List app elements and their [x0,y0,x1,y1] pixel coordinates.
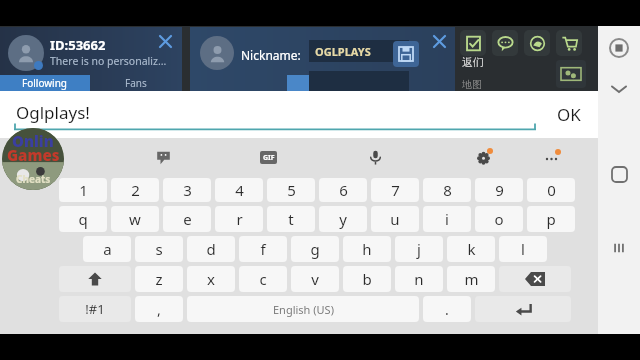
button[interactable]: z [135,266,183,292]
button[interactable]: 1 [59,178,107,202]
staticText: e [183,209,192,229]
staticText: ID:53662 [50,36,106,54]
staticText: l [521,239,525,259]
button[interactable]: Recents [609,238,629,258]
button[interactable]: Voice input [362,144,388,170]
button[interactable]: o [475,206,523,232]
button[interactable]: g [291,236,339,262]
staticText: s [155,239,163,259]
button[interactable]: 0 [527,178,575,202]
staticText: n [414,269,424,289]
button[interactable]: b [343,266,391,292]
button[interactable]: Game action 1 [492,30,518,56]
button[interactable]: d [187,236,235,262]
staticText: Nickname: [241,47,301,63]
button[interactable]: Game action 3 [556,30,582,56]
staticText: 9 [495,180,504,200]
button[interactable]: u [371,206,419,232]
staticText: 0 [547,180,556,200]
staticText: Following [22,76,68,90]
staticText: x [207,269,215,289]
staticText: Oglplays! [16,101,90,124]
button[interactable]: Following [0,75,90,91]
button[interactable]: Collapse [609,79,629,99]
button[interactable]: a [83,236,131,262]
staticText: Games [7,145,60,165]
button[interactable]: 2 [111,178,159,202]
button[interactable]: w [111,206,159,232]
button[interactable]: 9 [475,178,523,202]
staticText: z [155,269,163,289]
staticText: f [260,239,266,259]
button[interactable]: k [447,236,495,262]
button[interactable]: 8 [423,178,471,202]
button[interactable]: e [163,206,211,232]
button[interactable]: Fans [90,75,182,91]
staticText: Cheats [16,172,51,186]
button[interactable]: Enter [475,296,571,322]
staticText: g [310,239,320,259]
button[interactable]: l [499,236,547,262]
button[interactable]: 7 [371,178,419,202]
button[interactable]: p [527,206,575,232]
button[interactable]: . [423,296,471,322]
button[interactable]: 4 [215,178,263,202]
button[interactable]: f [239,236,287,262]
staticText: , [157,300,161,319]
button[interactable]: Stickers [150,144,176,170]
button[interactable]: s [135,236,183,262]
staticText: There is no personaliz... [50,54,167,68]
button[interactable]: 3 [163,178,211,202]
button[interactable]: i [423,206,471,232]
button[interactable]: OK [540,91,598,138]
button[interactable]: Game action 2 [524,30,550,56]
staticText: Fans [125,76,147,90]
staticText: o [494,209,504,229]
staticText: d [206,239,216,259]
button[interactable]: Save [393,41,419,67]
button[interactable]: Shift [59,266,131,292]
staticText: OGLPLAYS [315,44,371,59]
staticText: v [311,269,319,289]
staticText: m [464,269,479,289]
button[interactable]: Game action 0 [460,30,486,56]
button[interactable]: 6 [319,178,367,202]
button[interactable]: Close [429,31,449,51]
button[interactable]: Home [609,164,629,184]
button[interactable]: m [447,266,495,292]
staticText: 5 [287,180,296,200]
button[interactable]: j [395,236,443,262]
button[interactable]: Close [155,31,175,51]
staticText: k [467,239,476,259]
button[interactable]: More [538,144,564,170]
button[interactable]: x [187,266,235,292]
staticText: 返们 [462,55,484,69]
button[interactable]: !#1 [59,296,131,322]
button[interactable]: 5 [267,178,315,202]
button[interactable]: y [319,206,367,232]
staticText: h [362,239,372,259]
button[interactable]: , [135,296,183,322]
button[interactable]: c [239,266,287,292]
staticText: 1 [79,180,88,200]
staticText: w [129,209,141,229]
staticText: i [445,209,449,229]
button[interactable]: Settings [470,144,496,170]
button[interactable]: Backspace [499,266,571,292]
button[interactable]: r [215,206,263,232]
staticText: 7 [391,180,400,200]
button[interactable]: h [343,236,391,262]
button[interactable]: Stop recording [609,38,629,58]
button[interactable]: q [59,206,107,232]
button[interactable]: GIF [255,144,281,170]
button[interactable]: English (US) [187,296,419,322]
staticText: a [103,239,112,259]
button[interactable]: Map [556,60,586,88]
staticText: 4 [235,180,244,200]
staticText: t [288,209,294,229]
button[interactable]: OGLPLAYS [309,40,409,62]
button[interactable]: n [395,266,443,292]
button[interactable]: v [291,266,339,292]
staticText: 地图 [462,78,482,91]
button[interactable]: t [267,206,315,232]
